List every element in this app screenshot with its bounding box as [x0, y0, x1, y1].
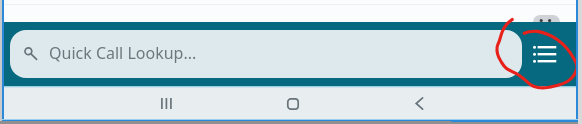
staticText: Quick Call Lookup... — [49, 42, 197, 64]
button[interactable]: More options — [533, 15, 560, 29]
button[interactable]: Quick Call Lookup... — [10, 30, 522, 78]
button[interactable]: List view — [530, 42, 559, 66]
button[interactable]: Home — [263, 88, 323, 119]
button[interactable]: Back — [389, 88, 449, 119]
button[interactable]: Recent apps — [136, 88, 196, 119]
